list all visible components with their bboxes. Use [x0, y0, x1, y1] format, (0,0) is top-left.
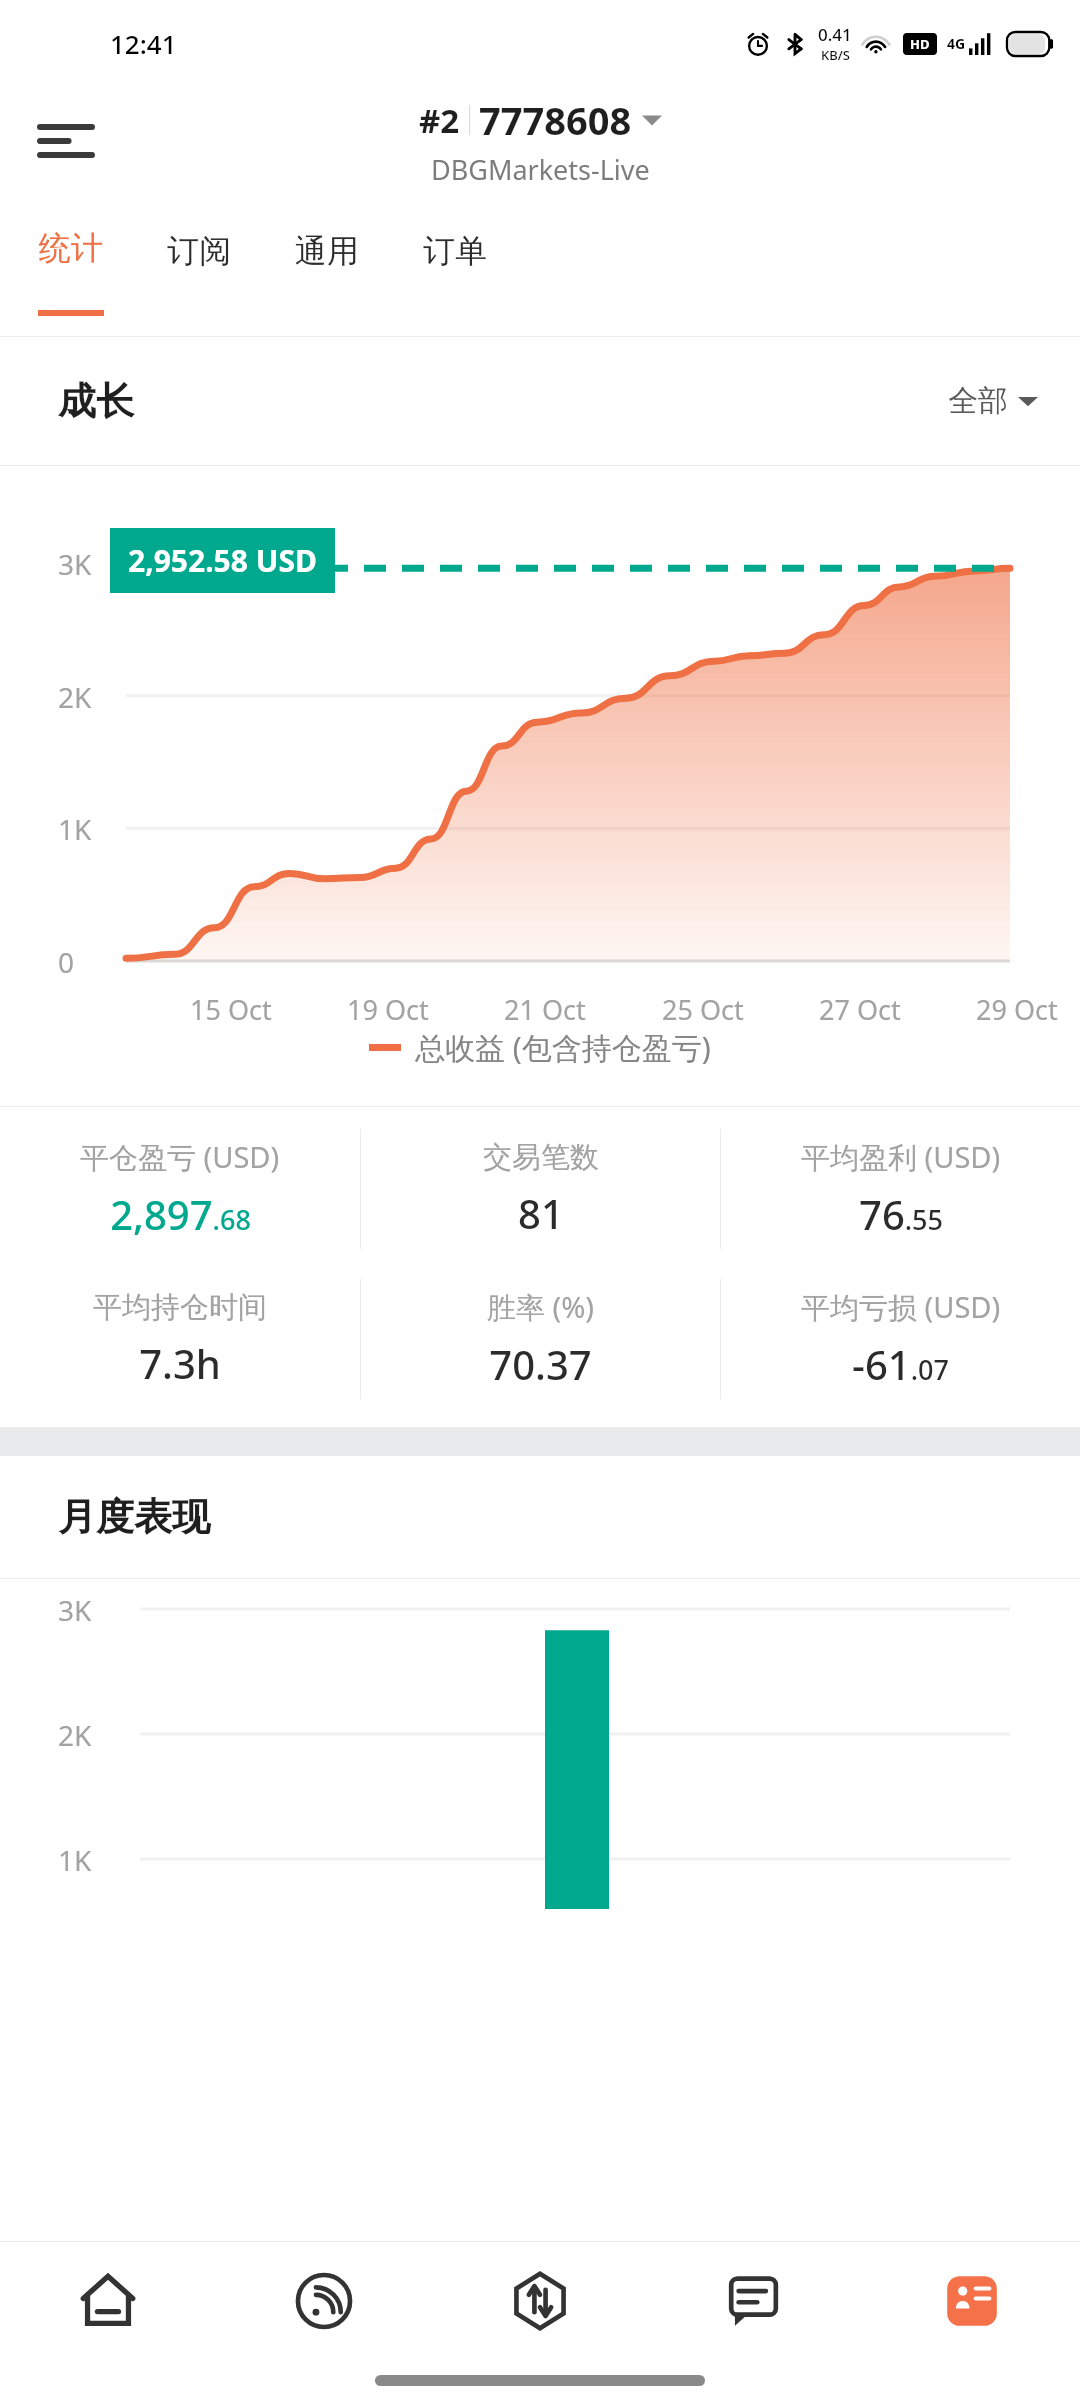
- staticText: 2,952.58 USD: [128, 540, 317, 581]
- staticText: 3K: [58, 1591, 92, 1629]
- staticText: 15 Oct: [190, 991, 272, 1028]
- staticText: 2K: [58, 678, 92, 716]
- button[interactable]: 订阅: [138, 196, 260, 336]
- staticText: 0.41: [818, 23, 852, 46]
- button[interactable]: 通用: [266, 196, 388, 336]
- button[interactable]: Menu: [34, 109, 98, 173]
- staticText: 统计: [39, 228, 103, 268]
- staticText: DBGMarkets-Live: [431, 151, 650, 188]
- staticText: 总收益 (包含持仓盈亏): [415, 1027, 711, 1068]
- staticText: 4G: [947, 34, 966, 53]
- staticText: 平均持仓时间: [93, 1289, 267, 1326]
- staticText: 交易笔数: [483, 1139, 599, 1176]
- staticText: 全部: [948, 382, 1008, 420]
- staticText: 81: [518, 1186, 564, 1240]
- staticText: 2,897.68: [110, 1187, 251, 1241]
- staticText: 1K: [58, 1841, 92, 1879]
- button[interactable]: Chats: [648, 2242, 864, 2360]
- staticText: 订单: [423, 231, 487, 271]
- staticText: 29 Oct: [976, 991, 1058, 1028]
- staticText: 平均盈利 (USD): [801, 1137, 1001, 1177]
- staticText: 2K: [58, 1716, 92, 1754]
- button[interactable]: Profile: [864, 2242, 1080, 2360]
- staticText: 平仓盈亏 (USD): [80, 1137, 280, 1177]
- staticText: #2: [419, 98, 460, 143]
- button[interactable]: #2: [419, 94, 662, 188]
- button[interactable]: Home: [0, 2242, 216, 2360]
- staticText: 月度表现: [58, 1493, 210, 1541]
- button[interactable]: 全部: [948, 382, 1038, 420]
- staticText: 1K: [58, 810, 92, 848]
- button[interactable]: Trade: [432, 2242, 648, 2360]
- staticText: 12:41: [110, 26, 177, 61]
- staticText: 3K: [58, 545, 92, 583]
- staticText: 27 Oct: [819, 991, 901, 1028]
- staticText: 通用: [295, 231, 359, 271]
- staticText: 7778608: [479, 94, 632, 146]
- button[interactable]: 订单: [394, 196, 516, 336]
- button[interactable]: 统计: [10, 196, 132, 336]
- staticText: 21 Oct: [504, 991, 586, 1028]
- button[interactable]: Signals: [216, 2242, 432, 2360]
- staticText: 订阅: [167, 231, 231, 271]
- staticText: 0: [58, 943, 75, 981]
- staticText: 7.3h: [139, 1336, 221, 1390]
- staticText: 19 Oct: [347, 991, 429, 1028]
- staticText: 成长: [58, 377, 134, 425]
- staticText: KB/S: [821, 46, 850, 64]
- staticText: -61.07: [852, 1337, 949, 1391]
- staticText: 25 Oct: [662, 991, 744, 1028]
- staticText: 平均亏损 (USD): [801, 1287, 1001, 1327]
- staticText: HD: [910, 35, 930, 53]
- staticText: 胜率 (%): [487, 1287, 595, 1327]
- staticText: 70.37: [489, 1337, 592, 1391]
- staticText: 76.55: [859, 1187, 943, 1241]
